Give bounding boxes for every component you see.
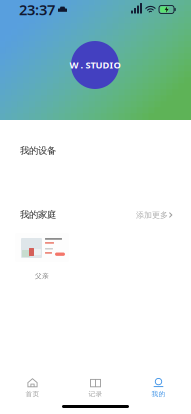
button[interactable]: 父亲 [15,233,69,283]
staticText: 我的 [151,390,165,398]
staticText: 我的家庭 [20,209,56,220]
staticText: 23:37 [19,0,55,19]
staticText: 首页 [25,390,39,398]
staticText: 我的设备 [20,145,56,156]
staticText: 添加更多 [136,210,168,220]
staticText: 父亲 [35,272,49,280]
staticText: 记录 [88,390,102,398]
button[interactable]: 记录 [64,377,127,413]
button[interactable]: 我的设备 [10,136,182,186]
button[interactable]: 添加更多 [128,209,172,221]
staticText: W . STUDIO [69,59,120,71]
button[interactable]: 我的 [127,377,190,413]
button[interactable]: 首页 [1,377,64,413]
